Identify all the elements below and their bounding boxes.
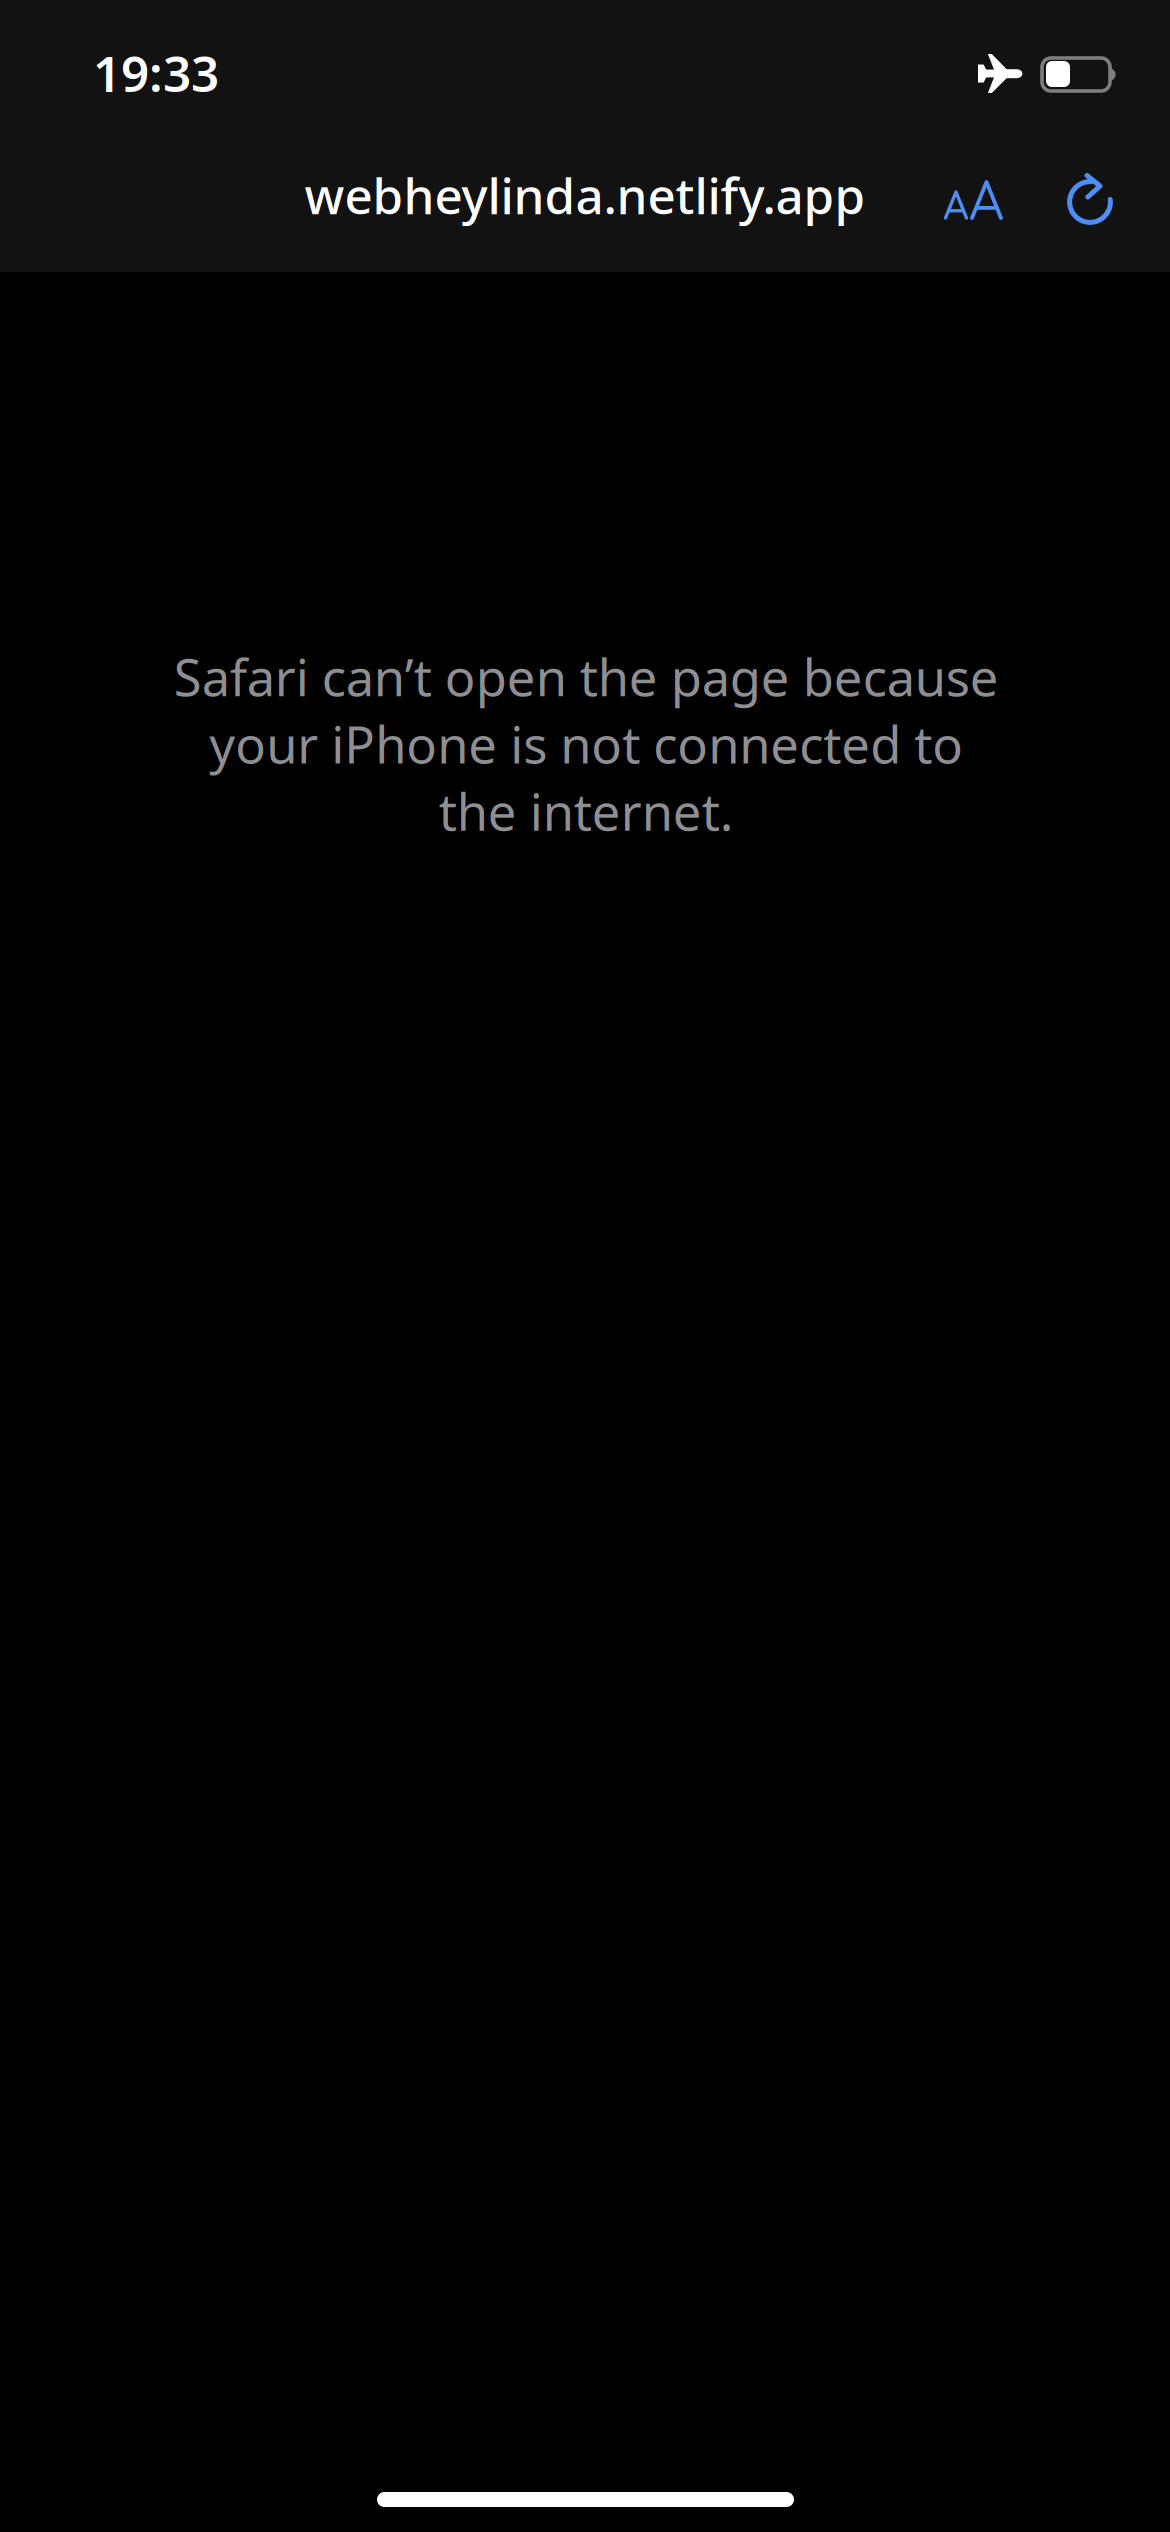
staticText: 19:33 bbox=[93, 40, 219, 105]
staticText: Safari can’t open the page because your … bbox=[173, 643, 998, 845]
staticText: webheylinda.netlify.app bbox=[304, 162, 865, 228]
button[interactable]: Reload bbox=[1043, 146, 1139, 242]
button[interactable]: webheylinda.netlify.app bbox=[275, 140, 895, 250]
button[interactable]: Page Settings bbox=[926, 152, 1022, 248]
